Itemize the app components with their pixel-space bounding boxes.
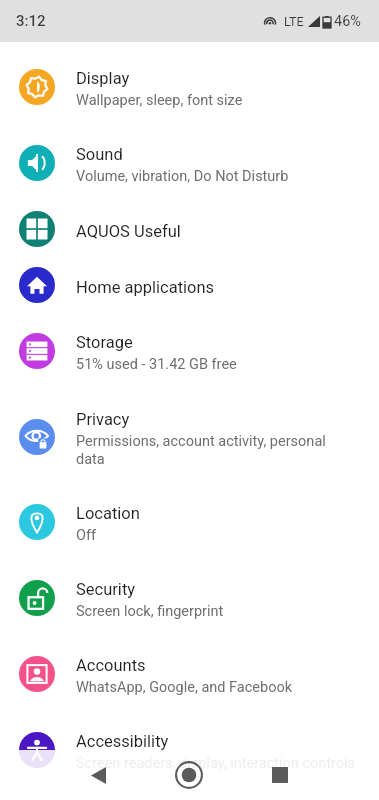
button[interactable]: Back [74,751,122,799]
staticText: Wallpaper, sleep, font size [76,92,243,109]
button[interactable]: Recent apps [256,751,304,799]
staticText: Privacy [76,410,130,429]
staticText: Security [76,580,136,599]
staticText: Screen lock, fingerprint [76,603,224,620]
button[interactable]: Accessibility [0,712,379,788]
staticText: Screen readers, display, interaction con… [76,755,356,772]
button[interactable]: Home applications [0,257,379,313]
staticText: AQUOS Useful [76,222,181,241]
staticText: LTE [284,14,304,29]
staticText: WhatsApp, Google, and Facebook [76,679,293,696]
button[interactable]: Display [0,49,379,125]
button[interactable]: Security [0,560,379,636]
staticText: Permissions, account activity, personal … [76,433,326,467]
button[interactable]: Accounts [0,636,379,712]
staticText: Location [76,504,140,523]
staticText: 46% [334,13,361,30]
staticText: Volume, vibration, Do Not Disturb [76,168,289,185]
staticText: 3:12 [16,12,46,30]
button[interactable]: Sound [0,125,379,201]
button[interactable]: Location [0,484,379,560]
staticText: Display [76,69,130,88]
staticText: 51% used - 31.42 GB free [76,356,237,373]
staticText: Home applications [76,278,215,297]
button[interactable]: Storage [0,313,379,389]
staticText: Accounts [76,656,146,675]
button[interactable]: Home [165,751,213,799]
staticText: Off [76,527,97,544]
button[interactable]: Privacy [0,389,379,484]
staticText: Storage [76,333,133,352]
staticText: Sound [76,145,123,164]
staticText: Accessibility [76,732,169,751]
button[interactable]: AQUOS Useful [0,201,379,257]
